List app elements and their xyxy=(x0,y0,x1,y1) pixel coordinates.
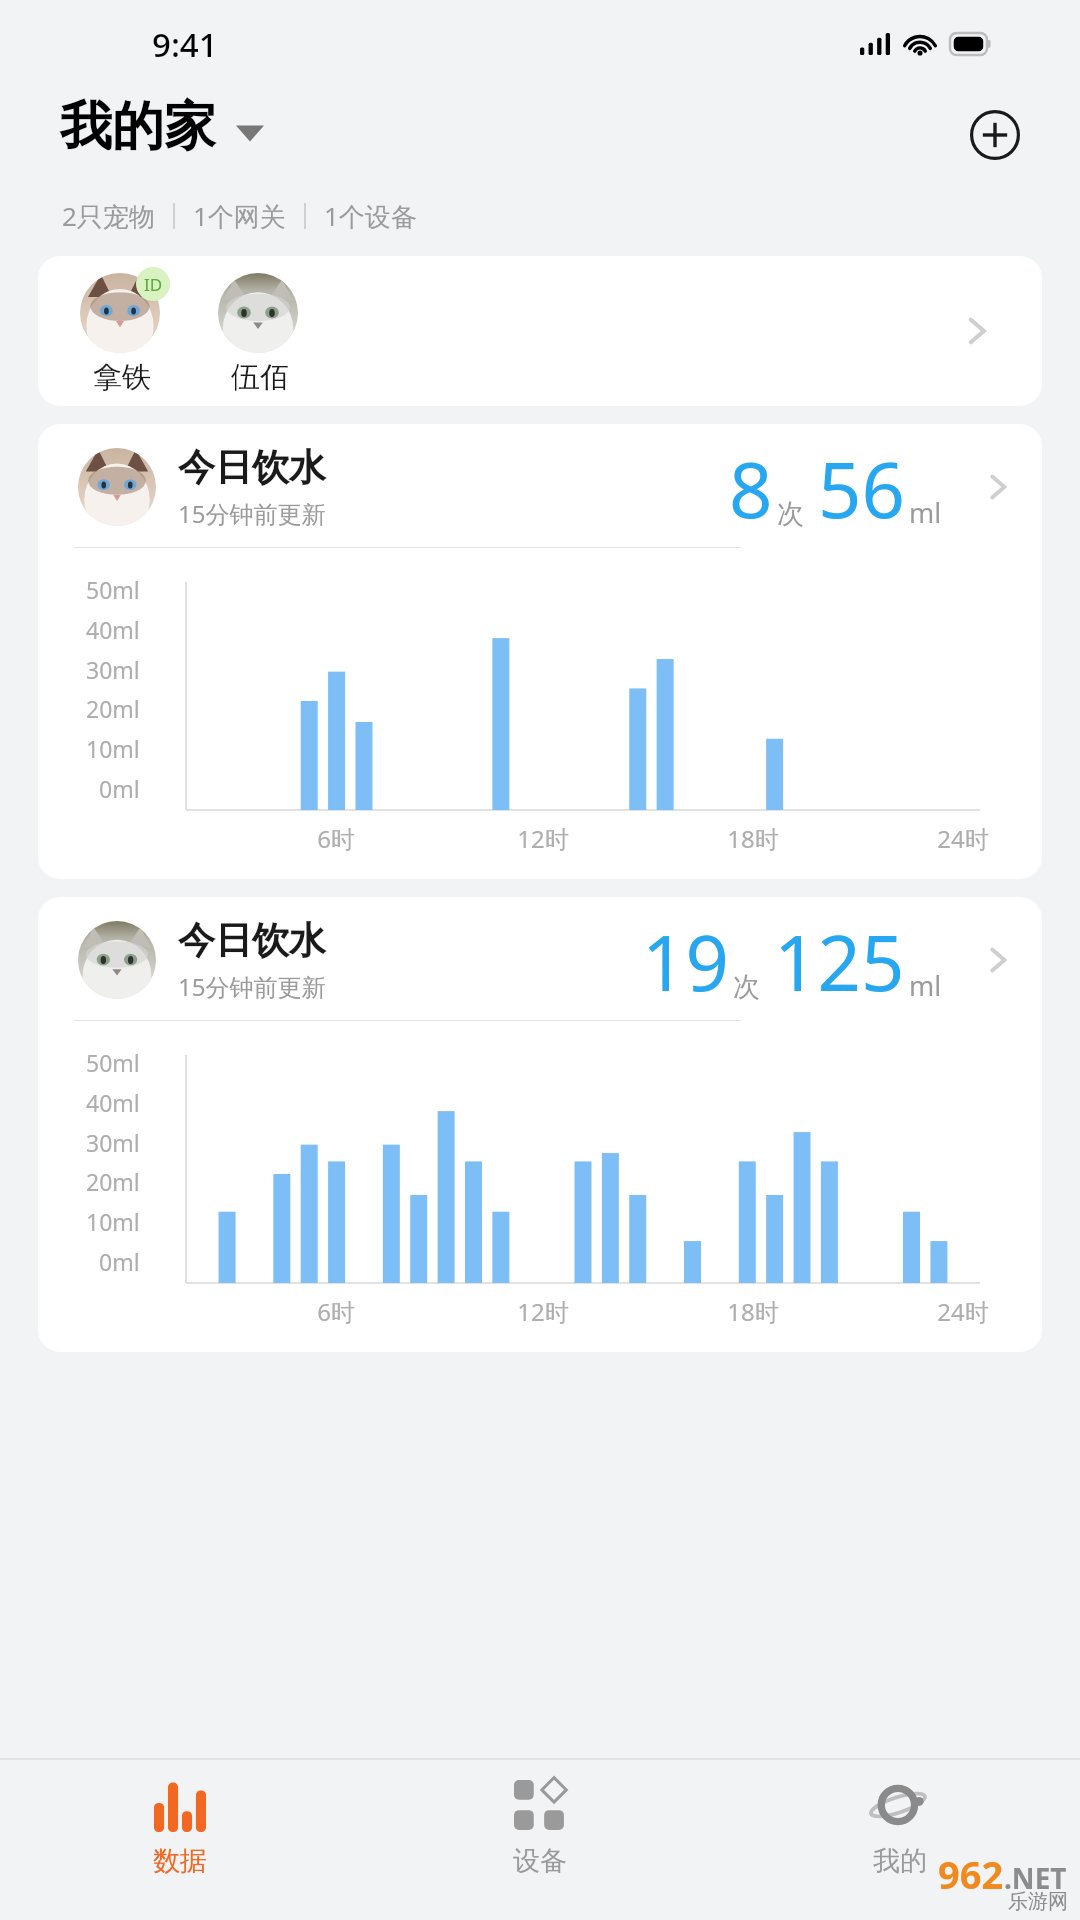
button[interactable]: 数据 xyxy=(0,1760,360,1878)
staticText: 962 xyxy=(938,1848,1004,1900)
staticText: 6时 xyxy=(317,822,355,855)
staticText: 次 xyxy=(777,497,804,531)
staticText: ID xyxy=(144,273,163,296)
staticText: 30ml xyxy=(86,1127,140,1158)
staticText: 10ml xyxy=(86,733,140,764)
staticText: 30ml xyxy=(86,654,140,685)
staticText: 8 xyxy=(729,437,773,541)
staticText: .NET xyxy=(1004,1859,1067,1897)
staticText: 40ml xyxy=(86,1087,140,1118)
staticText: 40ml xyxy=(86,614,140,645)
staticText: 伍佰 xyxy=(231,359,289,396)
staticText: ml xyxy=(909,494,942,531)
staticText: 2只宠物 xyxy=(62,198,155,234)
staticText: ml xyxy=(909,967,942,1004)
staticText: 1个网关 xyxy=(193,198,286,234)
staticText: 12时 xyxy=(517,822,569,855)
staticText: 18时 xyxy=(727,1295,779,1328)
button[interactable]: 设备 xyxy=(360,1760,720,1878)
staticText: 设备 xyxy=(513,1844,567,1878)
button[interactable]: 今日饮水 xyxy=(38,897,1042,1352)
button[interactable]: 今日饮水 xyxy=(38,424,1042,879)
button[interactable]: 我的家 xyxy=(60,94,264,160)
staticText: 0ml xyxy=(99,1246,140,1277)
staticText: 12时 xyxy=(517,1295,569,1328)
staticText: 次 xyxy=(733,970,760,1004)
staticText: 24时 xyxy=(937,1295,989,1328)
staticText: 今日饮水 xyxy=(178,917,326,964)
staticText: 10ml xyxy=(86,1206,140,1237)
staticText: 125 xyxy=(774,910,905,1014)
staticText: 0ml xyxy=(99,773,140,804)
staticText: 20ml xyxy=(86,693,140,724)
button[interactable]: 我的 xyxy=(720,1760,1080,1878)
button[interactable]: Add xyxy=(970,110,1020,160)
staticText: 50ml xyxy=(86,1047,140,1078)
staticText: 我的 xyxy=(873,1844,927,1878)
staticText: 20ml xyxy=(86,1166,140,1197)
staticText: 我的家 xyxy=(60,94,216,160)
staticText: 6时 xyxy=(317,1295,355,1328)
staticText: 19 xyxy=(642,910,729,1014)
staticText: 乐游网 xyxy=(1008,1889,1068,1914)
staticText: 15分钟前更新 xyxy=(178,970,326,1003)
staticText: 数据 xyxy=(153,1844,207,1878)
staticText: 9:41 xyxy=(152,22,218,67)
staticText: 拿铁 xyxy=(93,359,151,396)
staticText: 1个设备 xyxy=(324,198,417,234)
staticText: 56 xyxy=(818,437,905,541)
staticText: 50ml xyxy=(86,574,140,605)
staticText: 15分钟前更新 xyxy=(178,497,326,530)
staticText: 24时 xyxy=(937,822,989,855)
staticText: 今日饮水 xyxy=(178,444,326,491)
staticText: 18时 xyxy=(727,822,779,855)
button[interactable]: ID xyxy=(38,256,1042,406)
